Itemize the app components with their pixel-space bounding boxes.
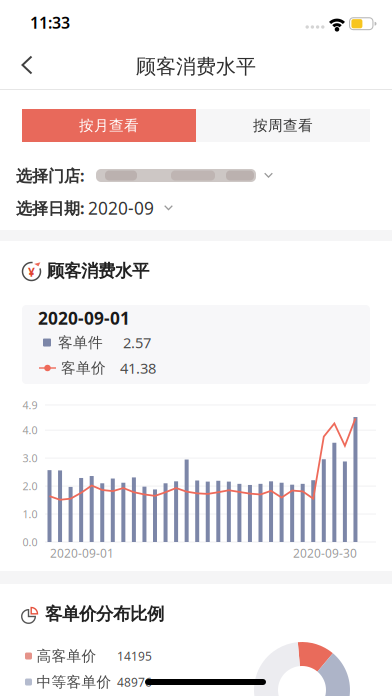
staticText: 14195 <box>117 648 152 664</box>
staticText: 顾客消费水平 <box>136 54 256 79</box>
staticText: 客单价分布比例 <box>45 603 164 625</box>
button[interactable]: 选择日期: <box>0 199 392 217</box>
staticText: 41.38 <box>120 358 156 378</box>
staticText: 选择门店: <box>16 165 84 186</box>
staticText: 48976 <box>117 674 152 690</box>
button[interactable]: 选择门店: <box>0 166 392 185</box>
staticText: 4.0 <box>22 423 37 437</box>
staticText: 顾客消费水平 <box>47 260 149 282</box>
staticText: 3.0 <box>22 451 37 465</box>
staticText: 2020-09-30 <box>293 545 357 561</box>
button[interactable]: Back <box>11 43 43 86</box>
staticText: 客单价 <box>61 359 106 377</box>
staticText: 2020-09-01 <box>50 545 114 561</box>
staticText: 2020-09 <box>88 196 154 219</box>
staticText: 2.0 <box>22 479 37 493</box>
staticText: 选择日期: <box>16 197 84 219</box>
staticText: 按周查看 <box>253 116 313 134</box>
staticText: ¥ <box>28 264 35 280</box>
staticText: 高客单价 <box>36 647 96 665</box>
staticText: 客单件 <box>58 333 103 351</box>
staticText: 中等客单价 <box>36 673 111 691</box>
staticText: 2.57 <box>123 333 151 352</box>
staticText: 4.9 <box>22 398 37 412</box>
staticText: 11:33 <box>30 12 70 33</box>
button[interactable]: 按月查看 <box>22 109 196 142</box>
staticText: 按月查看 <box>79 116 139 134</box>
button[interactable]: 按周查看 <box>196 109 370 142</box>
staticText: 1.0 <box>22 507 37 521</box>
staticText: 0.0 <box>22 535 37 549</box>
staticText: 2020-09-01 <box>38 306 130 329</box>
